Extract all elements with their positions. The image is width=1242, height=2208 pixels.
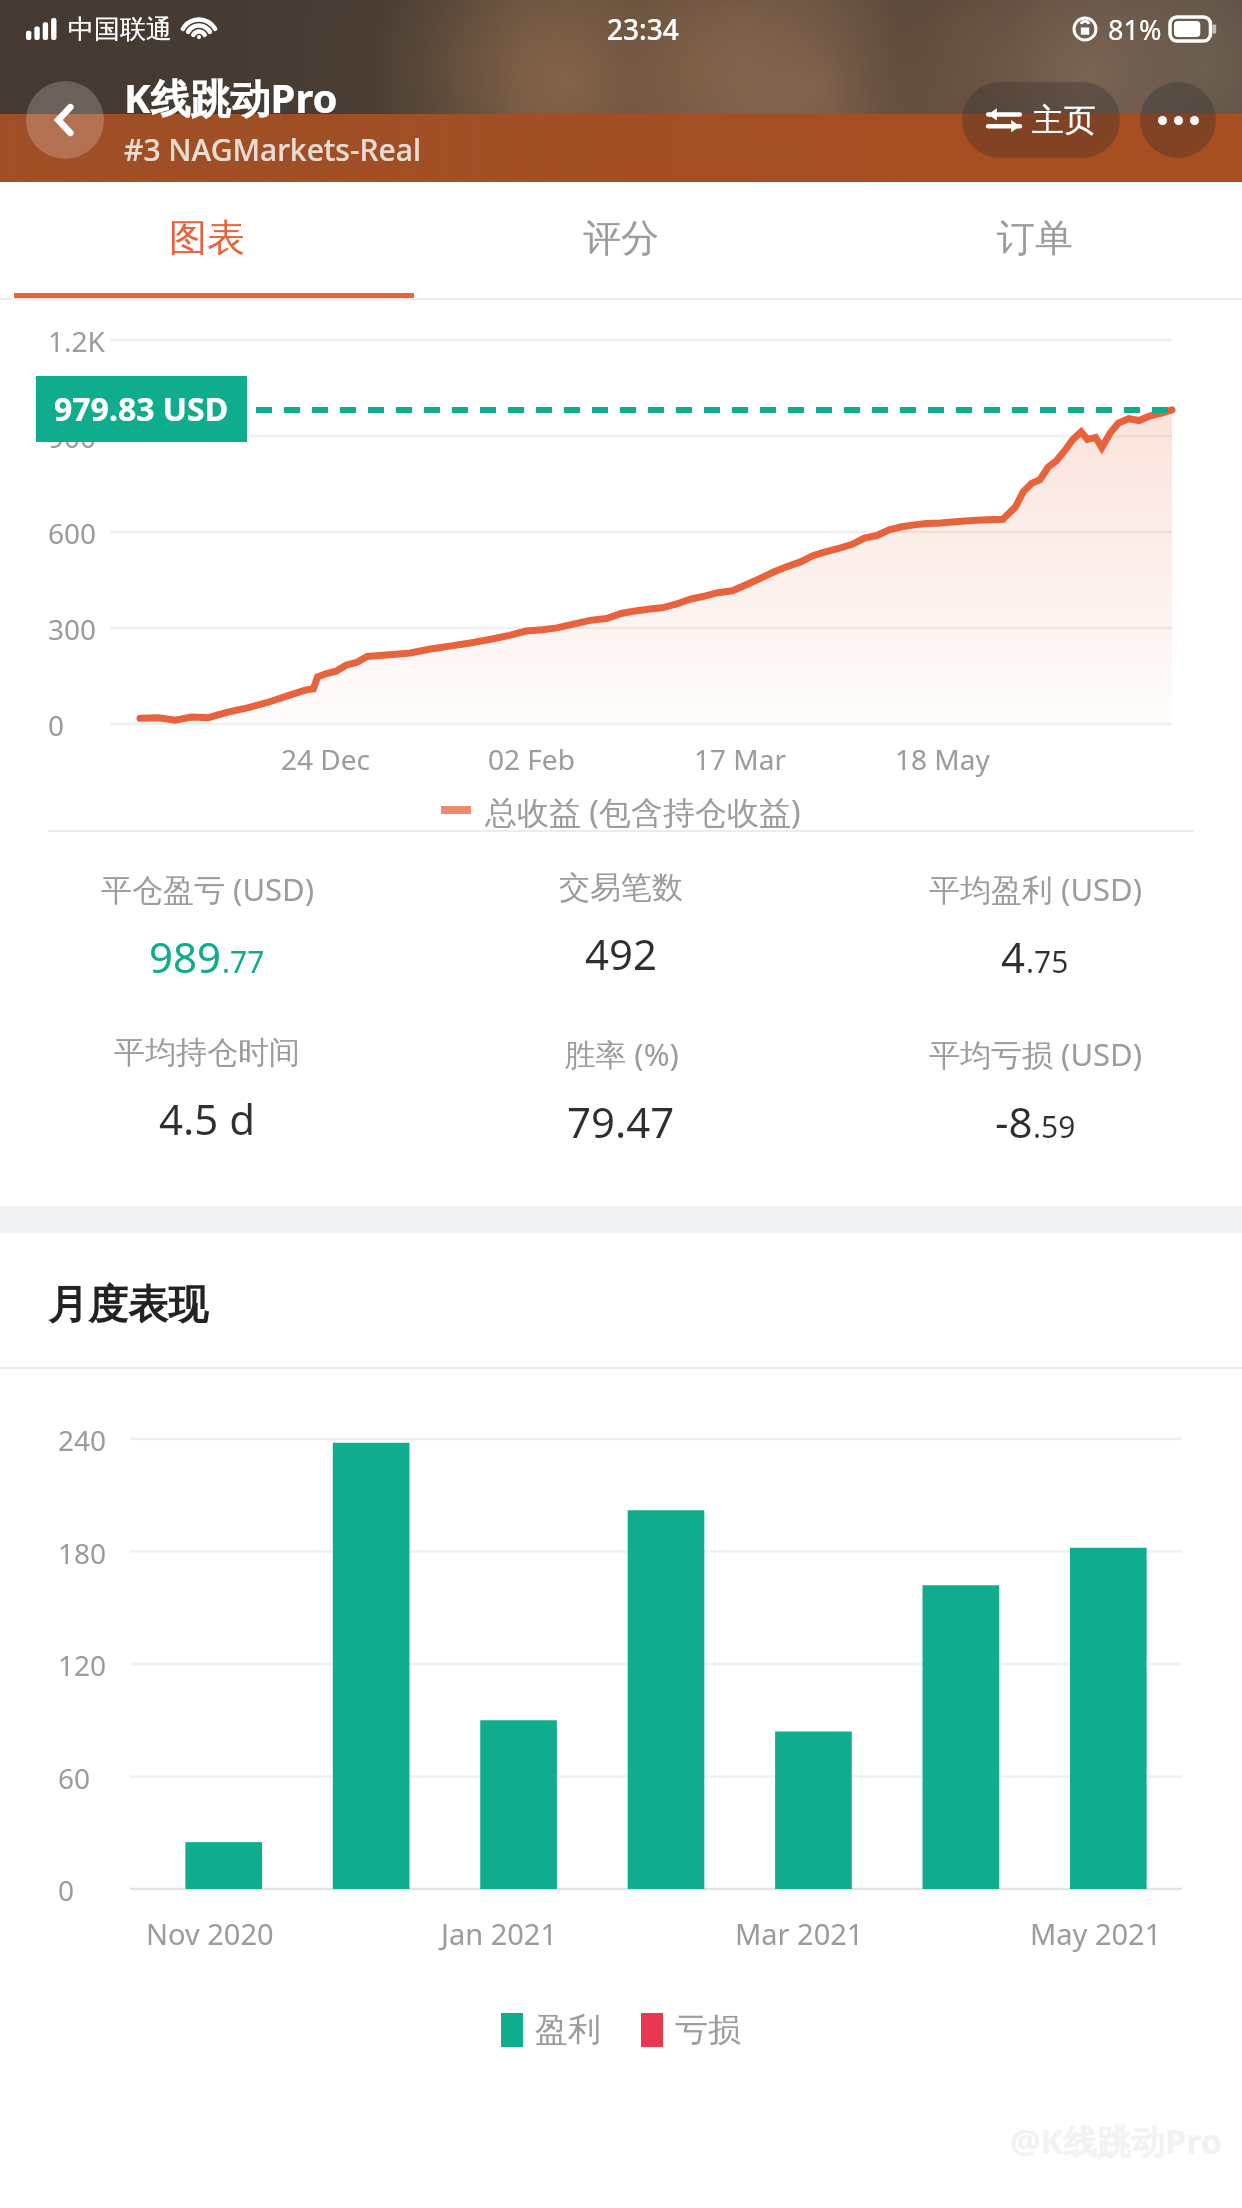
staticText: 主页 (1032, 100, 1096, 140)
staticText: 600 (48, 514, 97, 552)
staticText: 总收益 (包含持仓收益) (485, 790, 801, 830)
staticText: 81% (1108, 11, 1162, 48)
button[interactable]: More options (1140, 82, 1216, 158)
staticText: 盈利 (535, 2009, 601, 2051)
staticText: 4.5 d (159, 1090, 256, 1147)
staticText: 979.83 USD (54, 387, 229, 431)
staticText: @K线跳动Pro (1010, 2118, 1222, 2164)
staticText: 亏损 (675, 2009, 741, 2051)
staticText: 评分 (583, 214, 659, 262)
staticText: 300 (48, 610, 97, 648)
staticText: 17 Mar (694, 740, 786, 778)
staticText: 0 (58, 1871, 75, 1909)
staticText: May 2021 (1030, 1914, 1162, 1953)
staticText: 平仓盈亏 (USD) (101, 868, 314, 910)
staticText: 平均盈利 (USD) (929, 868, 1142, 910)
staticText: Jan 2021 (441, 1914, 558, 1953)
staticText: 23:34 (607, 10, 679, 48)
button[interactable]: 平均亏损 (USD) (828, 1033, 1242, 1150)
staticText: 1.2K (48, 322, 105, 360)
staticText: 4 (1001, 928, 1026, 985)
button[interactable]: 交易笔数 (414, 868, 828, 982)
staticText: 60 (58, 1759, 91, 1797)
staticText: 900 (48, 418, 97, 456)
staticText: 492 (585, 925, 658, 982)
staticText: 平均亏损 (USD) (929, 1033, 1142, 1075)
staticText: 订单 (997, 214, 1073, 262)
staticText: 989 (149, 928, 222, 985)
staticText: #3 NAGMarkets-Real (124, 129, 421, 170)
button[interactable]: 订单 (828, 182, 1242, 294)
button[interactable]: 平均持仓时间 (0, 1033, 414, 1147)
staticText: 图表 (169, 214, 245, 262)
button[interactable]: 主页 (962, 82, 1120, 158)
staticText: 120 (58, 1646, 107, 1684)
staticText: 月度表现 (48, 1279, 208, 1329)
staticText: 胜率 (%) (564, 1033, 679, 1075)
button[interactable]: 平仓盈亏 (USD) (0, 868, 414, 985)
staticText: K线跳动Pro (124, 70, 338, 125)
staticText: .59 (1033, 1106, 1076, 1147)
staticText: .75 (1026, 941, 1069, 982)
button[interactable]: Back (26, 81, 104, 159)
staticText: 240 (58, 1421, 107, 1459)
button[interactable]: 胜率 (%) (414, 1033, 828, 1150)
button[interactable]: 图表 (0, 182, 414, 294)
staticText: Mar 2021 (735, 1914, 864, 1953)
staticText: 0 (48, 706, 65, 744)
staticText: 24 Dec (281, 740, 370, 778)
staticText: .77 (222, 941, 265, 982)
staticText: 79.47 (567, 1093, 675, 1150)
staticText: 交易笔数 (559, 868, 683, 907)
staticText: 中国联通 (68, 13, 172, 46)
staticText: 18 May (895, 740, 990, 778)
staticText: 02 Feb (488, 740, 575, 778)
staticText: -8 (995, 1093, 1033, 1150)
staticText: 180 (58, 1534, 107, 1572)
button[interactable]: 平均盈利 (USD) (828, 868, 1242, 985)
staticText: 平均持仓时间 (114, 1033, 300, 1072)
staticText: Nov 2020 (146, 1914, 274, 1953)
button[interactable]: 评分 (414, 182, 828, 294)
